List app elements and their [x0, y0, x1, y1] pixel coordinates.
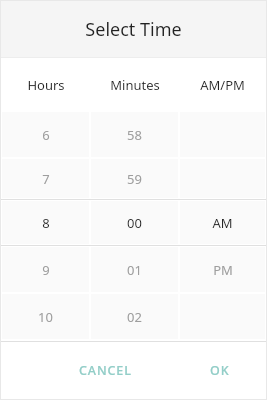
- staticText: 6: [42, 126, 50, 144]
- staticText: 02: [127, 308, 142, 326]
- staticText: AM: [212, 214, 233, 232]
- staticText: OK: [210, 362, 230, 379]
- staticText: Hours: [27, 76, 65, 94]
- button[interactable]: 02: [91, 294, 178, 339]
- button[interactable]: 9: [2, 247, 89, 292]
- button[interactable]: 10: [2, 294, 89, 339]
- staticText: 8: [42, 214, 50, 232]
- staticText: 10: [38, 308, 53, 326]
- button[interactable]: 6: [2, 112, 89, 157]
- staticText: 7: [42, 170, 50, 188]
- button[interactable]: 59: [91, 159, 178, 198]
- button[interactable]: 00: [91, 201, 178, 244]
- staticText: PM: [213, 261, 233, 279]
- staticText: 9: [42, 261, 50, 279]
- staticText: Minutes: [110, 76, 160, 94]
- button[interactable]: 58: [91, 112, 178, 157]
- button[interactable]: PM: [180, 247, 265, 292]
- button[interactable]: 7: [2, 159, 89, 198]
- staticText: CANCEL: [79, 362, 132, 379]
- staticText: 58: [127, 126, 142, 144]
- button[interactable]: OK: [196, 352, 244, 389]
- staticText: AM/PM: [200, 76, 245, 94]
- button[interactable]: CANCEL: [65, 352, 146, 389]
- staticText: 00: [127, 214, 142, 232]
- staticText: 59: [127, 170, 142, 188]
- button[interactable]: AM: [180, 201, 265, 244]
- staticText: Select Time: [85, 17, 182, 42]
- button[interactable]: 8: [2, 201, 89, 244]
- button[interactable]: 01: [91, 247, 178, 292]
- staticText: 01: [127, 261, 142, 279]
